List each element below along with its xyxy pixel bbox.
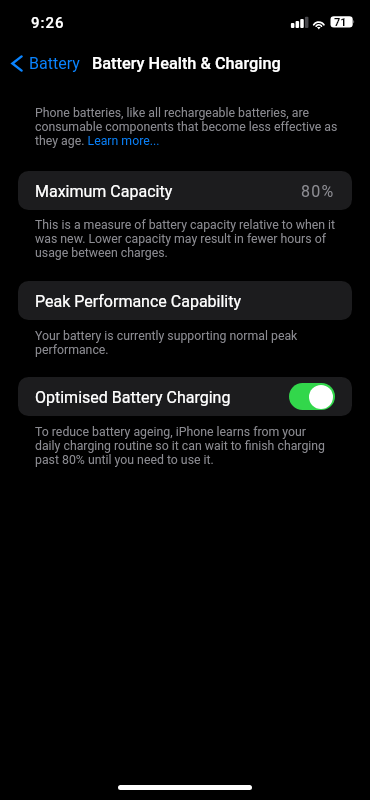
button[interactable]: Peak Performance Capability (18, 281, 352, 320)
staticText: 9:26 (31, 14, 65, 32)
staticText: To reduce battery ageing, iPhone learns … (35, 425, 355, 467)
staticText: Battery Health & Charging (92, 54, 281, 73)
staticText: 80% (301, 182, 335, 201)
staticText: 71 (334, 16, 347, 29)
button[interactable]: Optimised Battery Charging (18, 377, 352, 416)
button[interactable]: Maximum Capacity (18, 171, 352, 210)
staticText: This is a measure of battery capacity re… (35, 218, 355, 260)
staticText: Maximum Capacity (35, 182, 173, 201)
button[interactable]: Optimised Battery Charging toggle (289, 383, 335, 410)
staticText: Phone batteries, like all rechargeable b… (35, 106, 355, 148)
button[interactable]: Back to Battery (8, 51, 80, 75)
staticText: Your battery is currently supporting nor… (35, 329, 355, 357)
staticText: Battery (29, 54, 80, 73)
staticText: Peak Performance Capability (35, 292, 242, 311)
button[interactable]: Learn more (86, 133, 160, 147)
staticText: Optimised Battery Charging (35, 388, 231, 407)
